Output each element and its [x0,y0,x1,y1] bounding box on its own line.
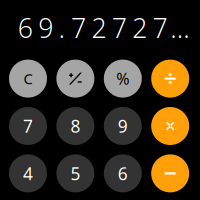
button[interactable]: 8 [56,107,94,145]
button[interactable]: Plus Minus [56,60,94,98]
button[interactable]: % [104,60,142,98]
button[interactable]: 9 [104,107,142,145]
staticText: % [116,68,129,89]
button[interactable]: 5 [56,154,94,192]
button[interactable]: 4 [9,154,47,192]
button[interactable]: Multiply [151,107,189,145]
button[interactable]: Divide [151,60,189,98]
staticText: 5 [70,162,80,185]
button[interactable]: Minus [151,154,189,192]
staticText: 8 [70,114,80,137]
staticText: 6 [118,162,128,185]
staticText: C [23,69,32,88]
staticText: 69.7272727 [18,10,200,45]
button[interactable]: C [9,60,47,98]
button[interactable]: 7 [9,107,47,145]
button[interactable]: 6 [104,154,142,192]
staticText: 7 [23,114,33,137]
staticText: 9 [118,114,128,137]
staticText: 4 [23,162,33,185]
